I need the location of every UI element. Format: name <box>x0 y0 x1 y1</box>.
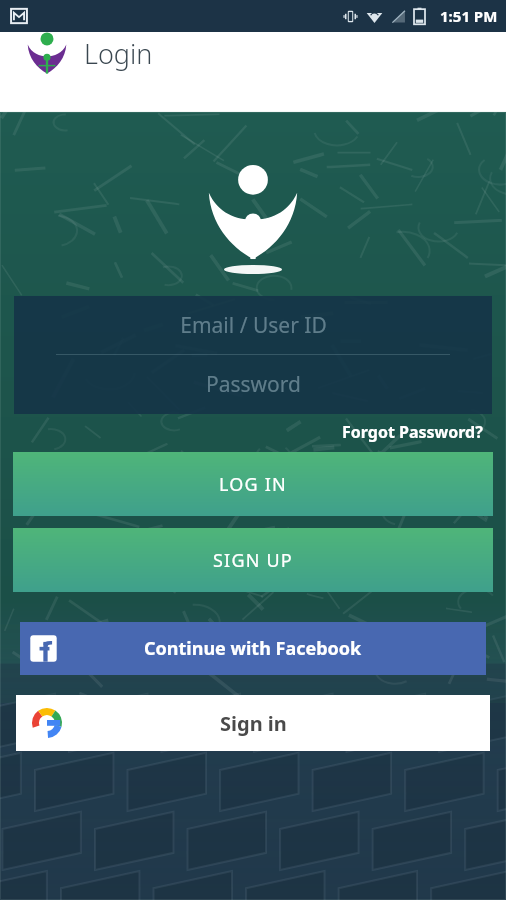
button[interactable]: LOG IN <box>13 452 493 516</box>
button[interactable]: Password <box>14 355 492 414</box>
staticText: LOG IN <box>219 472 287 497</box>
button[interactable]: Sign in <box>16 695 490 751</box>
button[interactable]: Forgot Password? <box>0 421 483 443</box>
staticText: 1:51 PM <box>440 6 498 26</box>
button[interactable]: Continue with Facebook <box>20 622 486 675</box>
staticText: Login <box>84 35 153 72</box>
staticText: Continue with Facebook <box>144 636 362 661</box>
staticText: Email / User ID <box>180 311 327 340</box>
button[interactable]: SIGN UP <box>13 528 493 592</box>
staticText: SIGN UP <box>213 548 293 573</box>
staticText: Sign in <box>220 710 287 737</box>
staticText: Password <box>206 370 301 399</box>
staticText: Forgot Password? <box>342 421 483 443</box>
button[interactable]: Email / User ID <box>14 296 492 354</box>
